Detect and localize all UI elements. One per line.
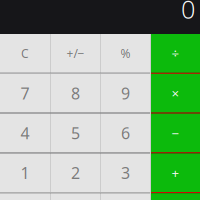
staticText: − — [171, 124, 179, 142]
button[interactable]: 0 — [51, 193, 100, 200]
button[interactable]: 1 — [0, 153, 50, 192]
staticText: ÷ — [171, 44, 179, 62]
button[interactable]: +/− — [51, 34, 100, 73]
button[interactable]: 5 — [51, 114, 100, 152]
button[interactable]: 4 — [0, 114, 50, 152]
staticText: 1 — [20, 162, 29, 183]
button[interactable]: − — [151, 114, 200, 152]
staticText: + — [171, 164, 179, 182]
button[interactable]: 7 — [0, 74, 50, 113]
button[interactable]: × — [151, 74, 200, 113]
staticText: 3 — [121, 162, 130, 183]
staticText: +/− — [66, 45, 84, 61]
button[interactable]: . — [0, 193, 50, 200]
button[interactable]: 6 — [101, 114, 150, 152]
staticText: C — [21, 45, 29, 61]
staticText: 9 — [121, 83, 130, 104]
button[interactable]: ÷ — [151, 34, 200, 73]
button[interactable]: C — [0, 34, 50, 73]
staticText: 8 — [71, 83, 80, 104]
button[interactable]: 3 — [101, 153, 150, 192]
staticText: 5 — [71, 122, 80, 144]
staticText: 7 — [20, 83, 29, 104]
staticText: 6 — [121, 122, 130, 144]
button[interactable]: 9 — [101, 74, 150, 113]
staticText: 2 — [71, 162, 80, 183]
button[interactable]: = — [101, 193, 150, 200]
button[interactable]: % — [101, 34, 150, 73]
staticText: × — [171, 84, 179, 102]
staticText: % — [120, 45, 130, 61]
button[interactable]: 8 — [51, 74, 100, 113]
staticText: 4 — [20, 122, 29, 144]
staticText: 0 — [181, 0, 195, 26]
button[interactable]: + — [151, 153, 200, 192]
button[interactable]: 2 — [51, 153, 100, 192]
button[interactable]: = — [151, 193, 200, 200]
